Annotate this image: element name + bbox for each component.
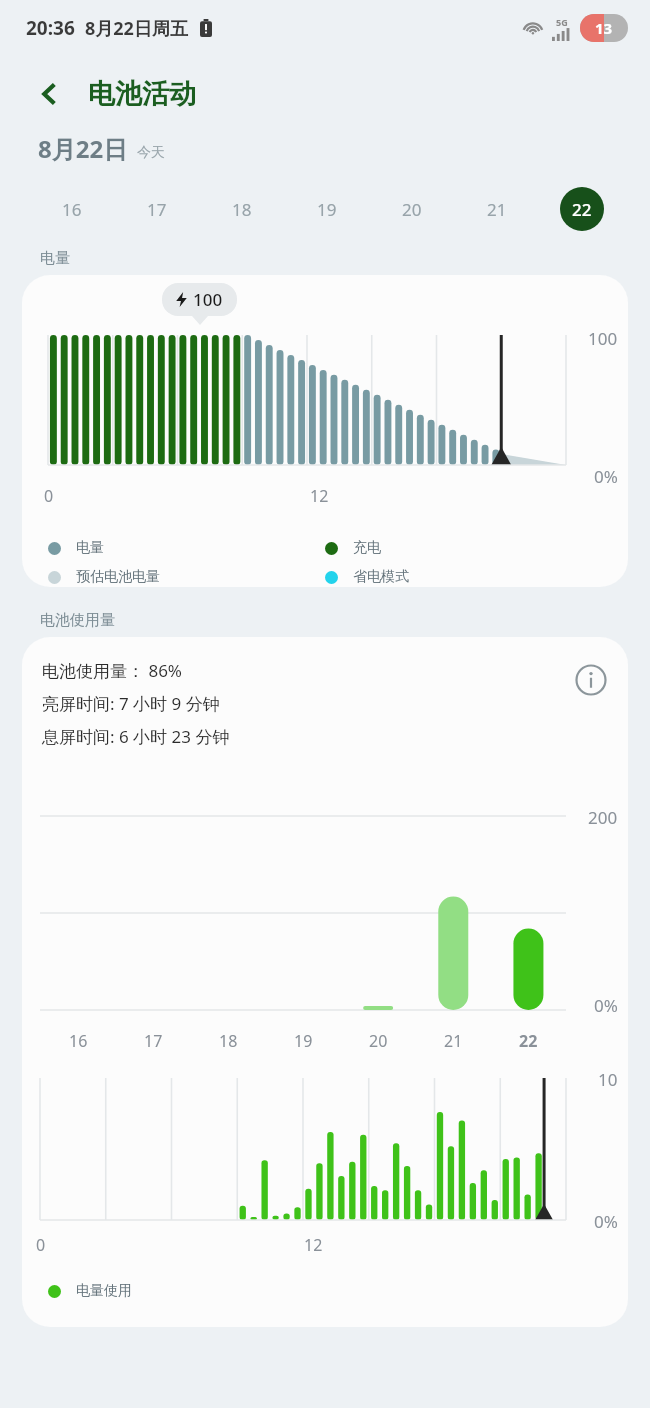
staticText: 电池使用量： 86%: [42, 659, 182, 682]
staticText: 20: [369, 1030, 388, 1052]
staticText: 21: [487, 198, 507, 221]
staticText: 17: [147, 198, 167, 221]
button[interactable]: 16: [30, 183, 114, 235]
staticText: 息屏时间: 6 小时 23 分钟: [42, 725, 230, 748]
staticText: 100: [193, 288, 223, 311]
staticText: 0%: [594, 1210, 618, 1233]
staticText: 0%: [594, 994, 618, 1017]
staticText: 电量使用: [76, 1282, 132, 1300]
staticText: 20:36: [26, 15, 75, 41]
staticText: 21: [444, 1030, 463, 1052]
button[interactable]: 20: [369, 183, 454, 235]
staticText: 12: [304, 1234, 323, 1256]
staticText: 5G: [556, 16, 568, 28]
staticText: 电量: [76, 539, 104, 557]
button[interactable]: 22: [539, 183, 624, 235]
staticText: 8月22日: [38, 132, 128, 165]
button[interactable]: 返回: [26, 70, 74, 118]
button[interactable]: 100: [22, 275, 628, 587]
staticText: 充电: [353, 539, 381, 557]
staticText: 12: [310, 485, 329, 503]
staticText: 电量: [40, 249, 70, 268]
staticText: 今天: [137, 144, 165, 162]
staticText: 0: [36, 1234, 46, 1256]
staticText: 0%: [594, 465, 618, 488]
staticText: 20: [402, 198, 422, 221]
staticText: 17: [144, 1030, 163, 1052]
staticText: 8月22日周五: [85, 16, 188, 41]
staticText: 19: [317, 198, 337, 221]
staticText: 16: [62, 198, 82, 221]
button[interactable]: 17: [114, 183, 199, 235]
staticText: 0: [44, 485, 54, 503]
staticText: 18: [232, 198, 252, 221]
button[interactable]: 信息: [570, 659, 612, 701]
staticText: 22: [572, 198, 592, 221]
button[interactable]: 19: [284, 183, 369, 235]
staticText: 200: [588, 806, 618, 829]
staticText: 预估电池电量: [76, 568, 160, 586]
button[interactable]: 电池使用量： 86%: [22, 637, 628, 1327]
staticText: 100: [588, 327, 618, 350]
staticText: 13: [595, 18, 613, 38]
button[interactable]: 18: [199, 183, 284, 235]
staticText: 电池活动: [88, 77, 196, 111]
staticText: 10: [598, 1068, 618, 1091]
staticText: 19: [294, 1030, 313, 1052]
staticText: 16: [69, 1030, 88, 1052]
staticText: 22: [519, 1030, 538, 1052]
staticText: 亮屏时间: 7 小时 9 分钟: [42, 692, 220, 715]
staticText: 省电模式: [353, 568, 409, 586]
button[interactable]: 21: [454, 183, 539, 235]
staticText: 电池使用量: [40, 611, 115, 630]
staticText: 18: [219, 1030, 238, 1052]
